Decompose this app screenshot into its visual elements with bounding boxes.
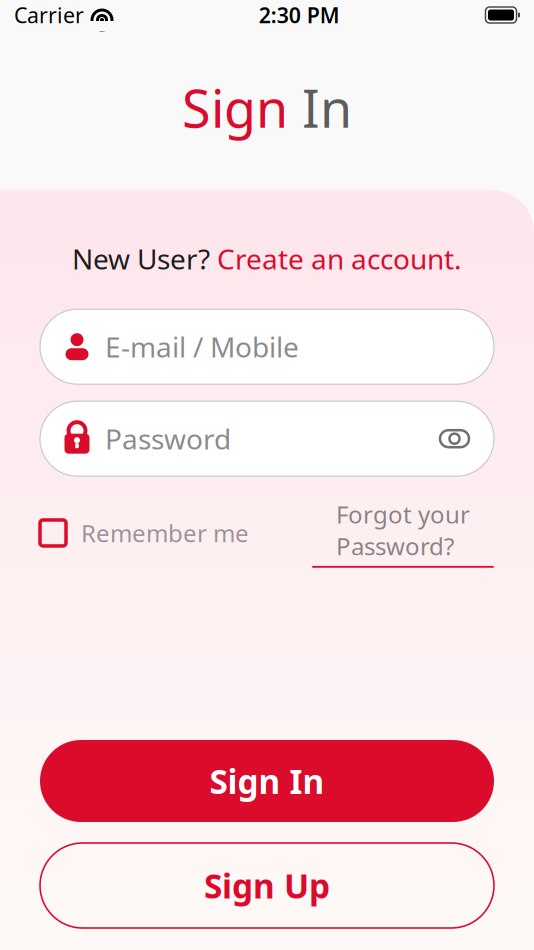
- staticText: Password: [105, 420, 231, 457]
- staticText: In: [288, 73, 352, 142]
- staticText: Create an account.: [217, 240, 462, 277]
- staticText: Sign: [182, 73, 288, 142]
- staticText: 2:30 PM: [259, 1, 340, 29]
- button[interactable]: New User?: [72, 240, 462, 277]
- staticText: Sign Up: [204, 863, 330, 908]
- staticText: Sign In: [209, 759, 324, 803]
- button[interactable]: Password: [40, 401, 494, 476]
- button[interactable]: E-mail / Mobile: [40, 309, 494, 384]
- staticText: E-mail / Mobile: [105, 328, 299, 365]
- button[interactable]: Remember me: [40, 517, 249, 549]
- button[interactable]: Sign In: [40, 740, 494, 822]
- staticText: Carrier: [14, 1, 84, 29]
- button[interactable]: Sign Up: [40, 843, 494, 928]
- staticText: New User?: [72, 240, 217, 277]
- staticText: Forgot your Password?: [336, 498, 470, 562]
- button[interactable]: Forgot your Password?: [312, 498, 494, 568]
- staticText: Remember me: [81, 517, 249, 549]
